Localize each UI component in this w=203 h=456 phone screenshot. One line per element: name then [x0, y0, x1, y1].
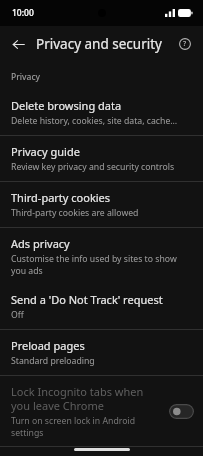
staticText: Off [11, 309, 24, 321]
staticText: ? [183, 39, 187, 49]
button[interactable]: Lock Incognito tabs when you leave Chrom… [0, 376, 203, 446]
staticText: Delete history, cookies, site data, cach… [11, 115, 178, 127]
staticText: Standard preloading [11, 355, 95, 367]
button[interactable]: Preload pages [0, 330, 203, 375]
staticText: Send a 'Do Not Track' request [11, 292, 163, 307]
staticText: Customise the info used by sites to show… [11, 253, 192, 276]
button[interactable]: Privacy guide [0, 136, 203, 181]
staticText: Review key privacy and security controls [11, 161, 175, 173]
staticText: Ads privacy [11, 236, 70, 251]
staticText: Third-party cookies are allowed [11, 207, 139, 219]
staticText: Privacy [11, 71, 41, 83]
button[interactable]: Third-party cookies [0, 182, 203, 227]
button[interactable]: Back [4, 30, 32, 58]
staticText: Lock Incognito tabs when you leave Chrom… [11, 384, 161, 413]
button[interactable]: Delete browsing data [0, 90, 203, 135]
staticText: Privacy guide [11, 144, 80, 159]
staticText: Turn on screen lock in Android settings [11, 415, 161, 438]
staticText: Third-party cookies [11, 190, 111, 205]
button[interactable]: Send a 'Do Not Track' request [0, 284, 203, 329]
staticText: Delete browsing data [11, 98, 122, 113]
button[interactable]: Lock Incognito tabs [169, 404, 194, 419]
staticText: 10:00 [12, 7, 34, 19]
staticText: Preload pages [11, 338, 85, 353]
staticText: Privacy and security [36, 35, 172, 53]
button[interactable]: Help [172, 31, 198, 57]
button[interactable]: Ads privacy [0, 228, 203, 284]
